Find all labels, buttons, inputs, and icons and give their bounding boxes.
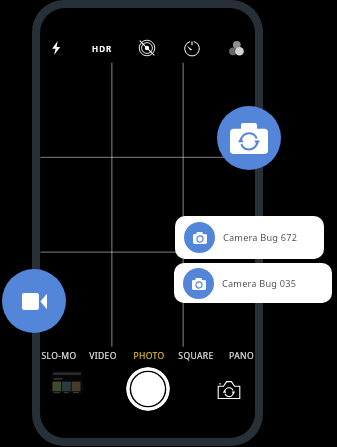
button[interactable]: VIDEO — [79, 348, 127, 364]
staticText: Camera Bug 035 — [222, 277, 297, 290]
button[interactable]: PANO — [217, 348, 265, 364]
button[interactable]: Last photo — [50, 371, 83, 395]
button[interactable]: Shutter — [126, 367, 170, 411]
button[interactable]: HDR — [86, 34, 118, 62]
button[interactable]: PHOTO — [125, 348, 173, 364]
staticText: PHOTO — [133, 350, 165, 362]
staticText: SLO-MO — [41, 350, 77, 362]
button[interactable]: Live Photo off — [131, 34, 163, 62]
button[interactable]: Timer — [176, 34, 208, 62]
button[interactable]: Record video — [2, 269, 66, 333]
staticText: SQUARE — [178, 350, 214, 362]
staticText: PANO — [229, 350, 254, 362]
button[interactable]: SLO-MO — [35, 348, 83, 364]
staticText: VIDEO — [89, 350, 117, 362]
button[interactable]: Camera switch — [217, 106, 281, 170]
button[interactable]: Switch camera — [213, 376, 245, 404]
staticText: Camera Bug 672 — [223, 231, 298, 244]
button[interactable]: Flash — [40, 34, 72, 62]
button[interactable]: Camera Bug 672 — [175, 216, 324, 259]
button[interactable]: Camera Bug 035 — [174, 263, 332, 303]
button[interactable]: SQUARE — [172, 348, 220, 364]
button[interactable]: Filters — [221, 34, 253, 62]
staticText: HDR — [92, 43, 113, 54]
